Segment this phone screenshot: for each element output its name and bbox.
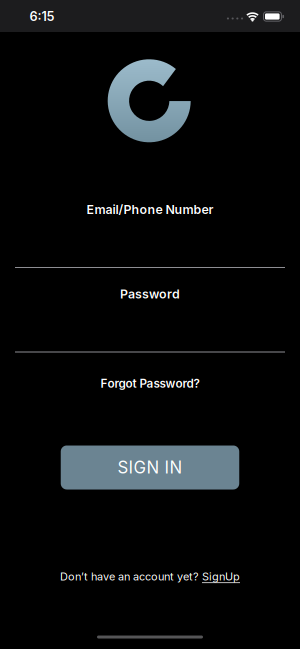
staticText: Email/Phone Number <box>86 202 213 217</box>
staticText: Forgot Password? <box>100 376 199 391</box>
button[interactable]: SignUp <box>202 570 240 583</box>
staticText: SIGN IN <box>117 457 182 478</box>
button[interactable]: SIGN IN <box>61 445 239 489</box>
staticText: Don’t have an account yet? <box>60 570 202 583</box>
staticText: Password <box>120 286 180 301</box>
staticText: SignUp <box>202 570 240 583</box>
staticText: 6:15 <box>29 9 54 24</box>
button[interactable]: Forgot Password? <box>100 376 199 391</box>
